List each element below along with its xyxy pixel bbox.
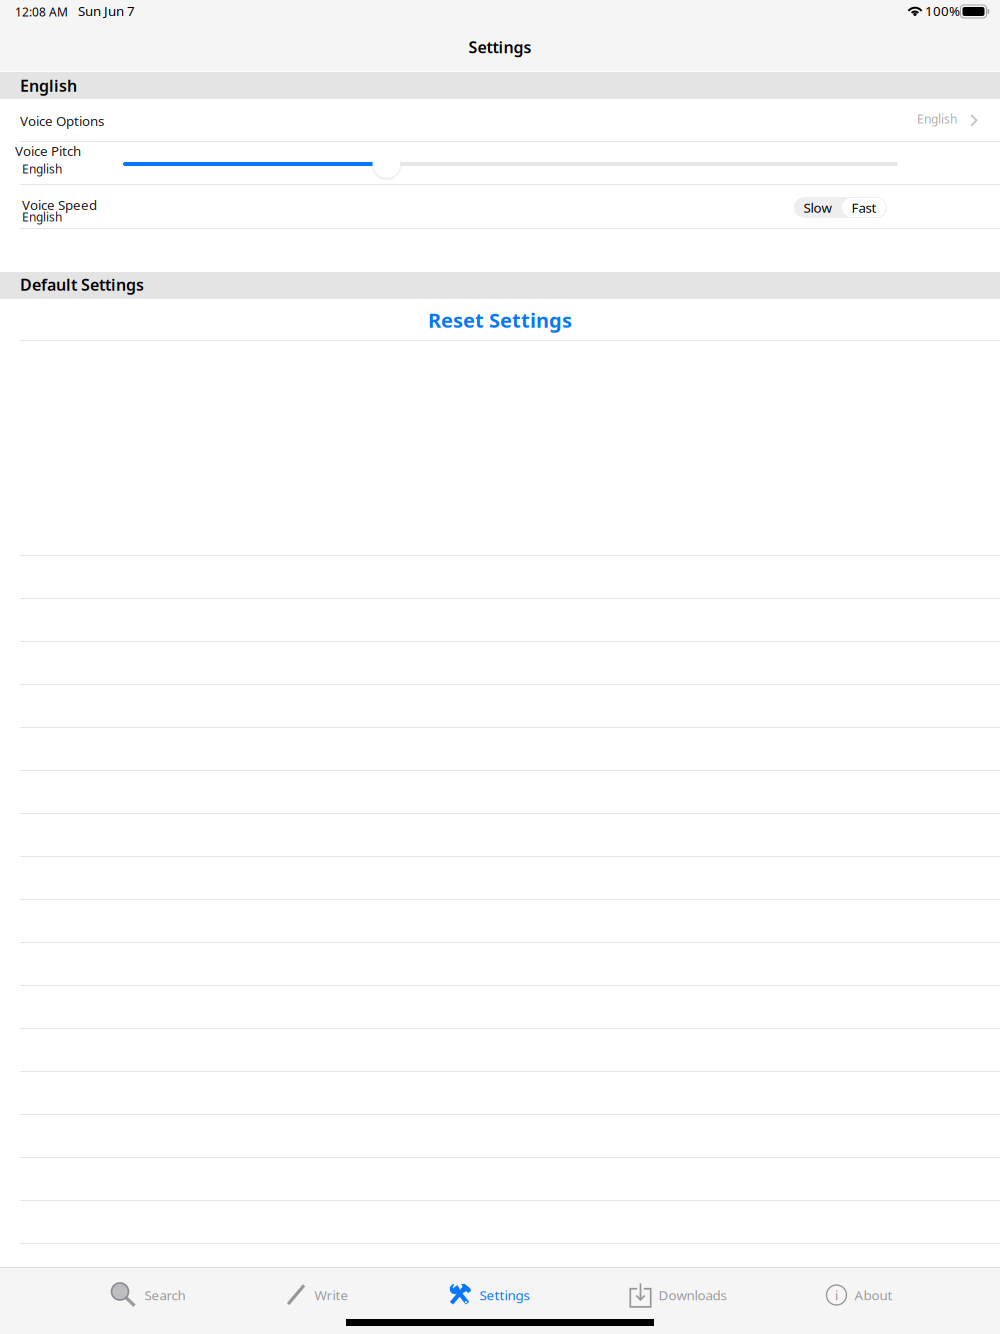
staticText: About [854,1286,892,1304]
staticText: Default Settings [20,274,144,295]
staticText: Sun Jun 7 [78,2,135,20]
button[interactable]: Fast [842,198,886,217]
staticText: i [835,1286,838,1304]
button[interactable]: Search [111,1272,185,1318]
staticText: Settings [468,36,531,58]
staticText: Reset Settings [428,307,572,333]
staticText: 100% [925,2,960,20]
staticText: Downloads [658,1286,726,1304]
staticText: 12:08 AM [15,4,68,20]
button[interactable]: Slow [794,197,841,218]
button[interactable]: Downloads [629,1272,726,1318]
staticText: Write [314,1286,348,1304]
staticText: Fast [851,199,876,216]
staticText: English [22,161,62,177]
button[interactable]: Voice Options [0,99,1000,142]
staticText: Voice Options [20,112,104,130]
staticText: Voice Speed [22,196,97,214]
button[interactable]: i [826,1272,892,1318]
button[interactable]: Reset Settings [0,299,1000,341]
staticText: Settings [479,1286,529,1304]
staticText: Voice Pitch [15,142,81,160]
staticText: Slow [803,199,831,216]
staticText: English [917,111,957,127]
staticText: English [20,75,77,96]
button[interactable]: Settings [448,1272,529,1318]
staticText: English [22,209,62,225]
button[interactable]: Write [285,1272,348,1318]
staticText: Search [144,1286,185,1304]
